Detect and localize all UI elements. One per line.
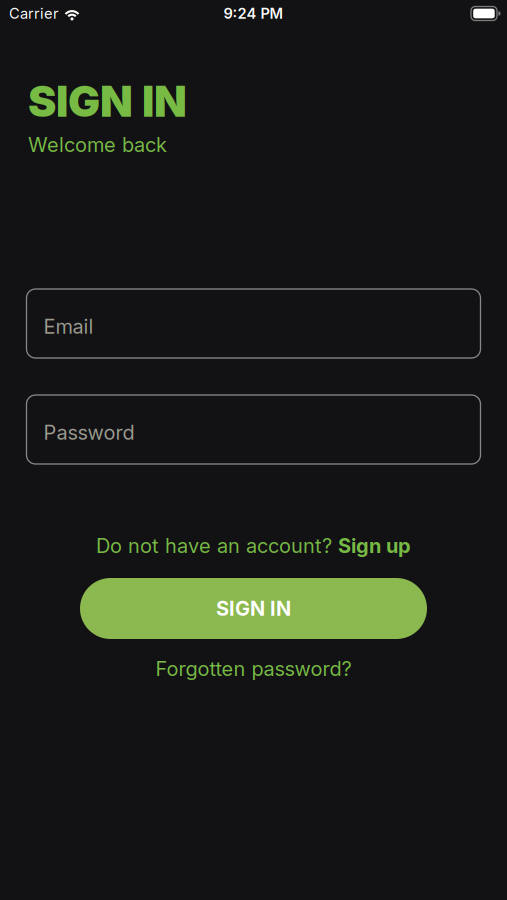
staticText: Carrier (9, 5, 59, 22)
button[interactable]: Sign up (338, 534, 411, 558)
staticText: SIGN IN (28, 76, 187, 126)
staticText: SIGN IN (216, 597, 291, 620)
button[interactable]: Forgotten password? (155, 657, 351, 681)
staticText: Welcome back (28, 133, 167, 157)
staticText: Password (43, 421, 134, 444)
staticText: 9:24 PM (223, 5, 283, 22)
staticText: Do not have an account? (96, 534, 332, 558)
button[interactable]: SIGN IN (80, 578, 427, 639)
textField[interactable]: Email (43, 315, 463, 338)
secureTextField[interactable]: Password (43, 421, 463, 444)
staticText: Sign up (338, 534, 411, 558)
staticText: Forgotten password? (155, 657, 351, 681)
staticText: Email (43, 315, 93, 338)
